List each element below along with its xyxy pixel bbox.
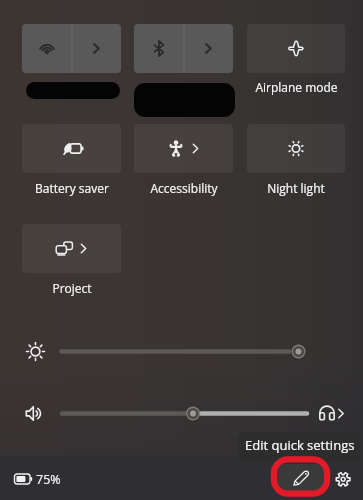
button[interactable]: Battery 75 percent xyxy=(13,468,61,490)
button[interactable]: Settings xyxy=(331,467,355,491)
button[interactable]: Volume xyxy=(20,398,344,430)
button[interactable]: Night light xyxy=(247,124,345,173)
button[interactable]: Edit quick settings xyxy=(277,464,326,492)
staticText: Airplane mode xyxy=(255,79,338,95)
staticText: 75% xyxy=(36,471,61,488)
button[interactable]: Bluetooth xyxy=(134,24,184,73)
button[interactable]: Wi-Fi xyxy=(22,24,72,73)
button[interactable]: Bluetooth settings xyxy=(184,24,233,73)
button[interactable]: Battery saver xyxy=(22,124,121,173)
button[interactable]: Airplane mode xyxy=(247,24,345,73)
staticText: Night light xyxy=(267,180,325,196)
staticText: Edit quick settings xyxy=(245,436,355,454)
staticText: Accessibility xyxy=(150,180,218,196)
button[interactable]: Brightness xyxy=(20,336,344,368)
button[interactable]: Accessibility xyxy=(134,124,233,173)
button[interactable]: Wi-Fi settings xyxy=(72,24,121,73)
staticText: Project xyxy=(52,280,92,296)
button[interactable]: Project xyxy=(22,224,121,273)
staticText: Battery saver xyxy=(35,180,109,196)
